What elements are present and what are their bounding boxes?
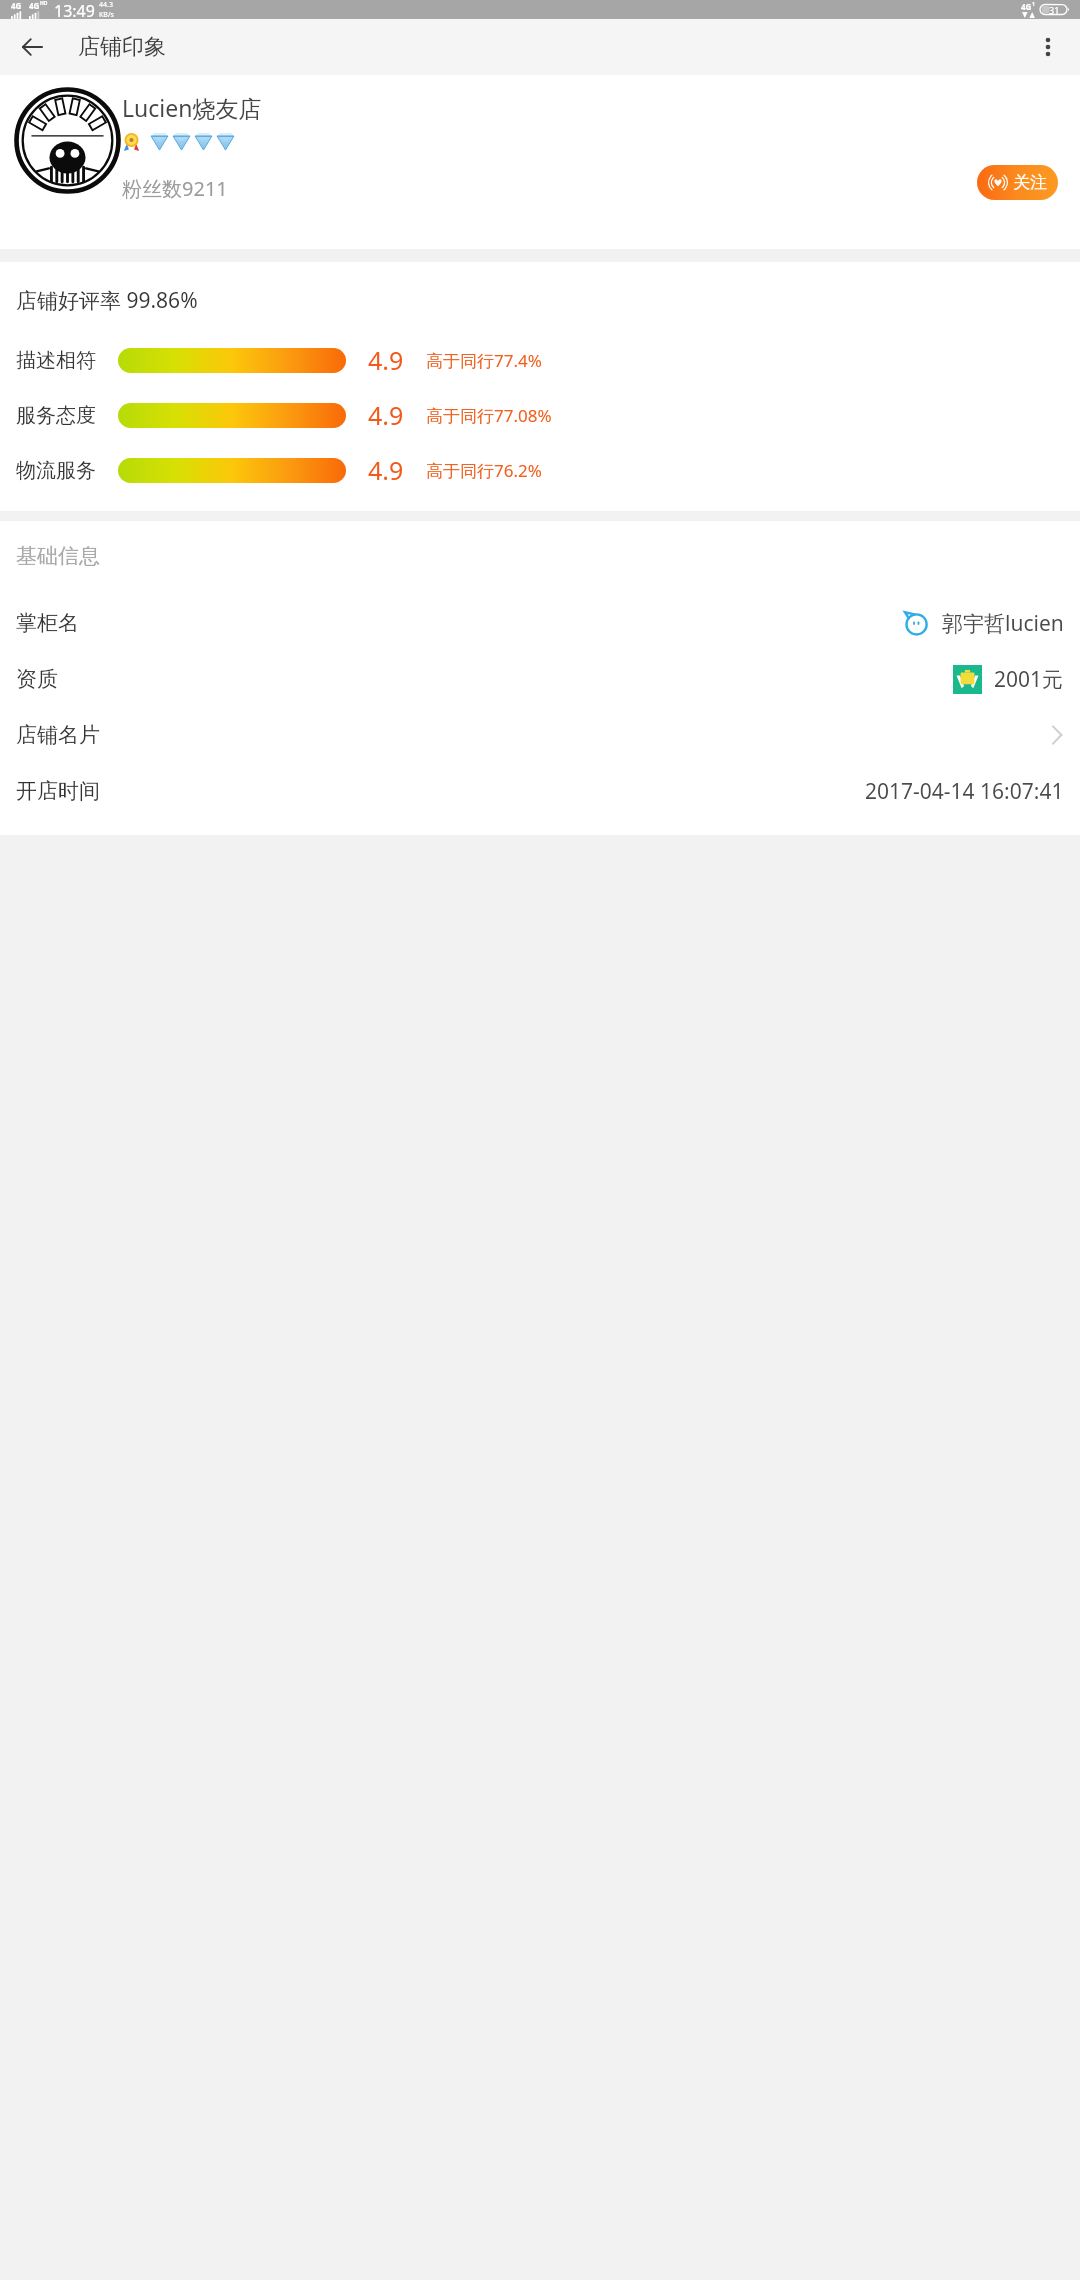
button[interactable]: 资质 bbox=[0, 651, 1080, 707]
staticText: 高于同行76.2% bbox=[426, 459, 542, 482]
staticText: 4G bbox=[29, 0, 40, 11]
staticText: KB/s bbox=[99, 10, 114, 19]
button[interactable]: 掌柜名 bbox=[0, 595, 1080, 651]
staticText: Lucien烧友店 bbox=[122, 92, 262, 123]
staticText: 基础信息 bbox=[16, 543, 100, 569]
staticText: HD bbox=[40, 0, 48, 7]
staticText: 店铺名片 bbox=[16, 722, 100, 748]
staticText: 粉丝数9211 bbox=[122, 175, 228, 202]
staticText: 关注 bbox=[1013, 172, 1047, 193]
staticText: 1 bbox=[1032, 1, 1035, 8]
staticText: 店铺印象 bbox=[78, 33, 166, 61]
staticText: 店铺好评率 99.86% bbox=[16, 286, 198, 315]
staticText: 31 bbox=[1049, 4, 1060, 16]
staticText: 物流服务 bbox=[16, 458, 118, 483]
button[interactable]: Shop logo bbox=[16, 89, 119, 192]
staticText: 2017-04-14 16:07:41 bbox=[865, 777, 1064, 806]
button[interactable]: More options bbox=[1024, 23, 1072, 71]
staticText: 4G bbox=[1021, 1, 1032, 12]
button[interactable]: 店铺名片 bbox=[0, 707, 1080, 763]
staticText: 资质 bbox=[16, 666, 58, 692]
staticText: 4G bbox=[11, 0, 22, 11]
staticText: 44.3 bbox=[99, 0, 113, 10]
staticText: 服务态度 bbox=[16, 403, 118, 428]
staticText: 掌柜名 bbox=[16, 610, 79, 636]
staticText: 高于同行77.4% bbox=[426, 349, 542, 372]
staticText: 开店时间 bbox=[16, 778, 100, 804]
button[interactable]: 描述相符 bbox=[0, 341, 1080, 379]
staticText: 4.9 bbox=[368, 343, 412, 377]
button[interactable]: 关注 bbox=[977, 165, 1058, 200]
staticText: 4.9 bbox=[368, 398, 412, 432]
button[interactable]: Back bbox=[8, 23, 56, 71]
staticText: 描述相符 bbox=[16, 348, 118, 373]
button[interactable]: 开店时间 bbox=[0, 763, 1080, 819]
staticText: 13:49 bbox=[54, 0, 95, 19]
staticText: 2001元 bbox=[994, 665, 1064, 694]
staticText: 4.9 bbox=[368, 453, 412, 487]
button[interactable]: 物流服务 bbox=[0, 451, 1080, 489]
staticText: 高于同行77.08% bbox=[426, 404, 552, 427]
staticText: 郭宇哲lucien bbox=[942, 609, 1064, 638]
button[interactable]: 服务态度 bbox=[0, 396, 1080, 434]
